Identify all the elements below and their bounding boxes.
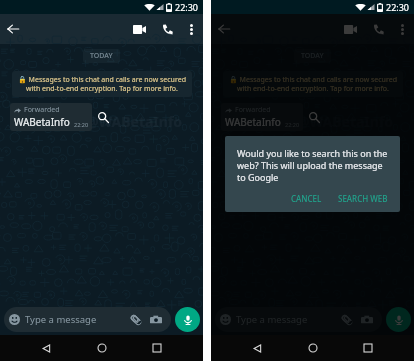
staticText: TODAY bbox=[90, 51, 113, 61]
button[interactable]: Attach bbox=[340, 313, 354, 327]
button[interactable]: Type a message bbox=[4, 307, 171, 332]
button[interactable]: Video call bbox=[336, 15, 364, 43]
staticText: CANCEL bbox=[291, 193, 322, 204]
button[interactable]: Back bbox=[248, 339, 266, 357]
button[interactable]: 🔒 Messages to this chat and calls are no… bbox=[12, 71, 192, 97]
staticText: Forwarded bbox=[235, 105, 271, 115]
button[interactable]: Search the web bbox=[96, 110, 110, 124]
button[interactable]: Search the web bbox=[307, 110, 321, 124]
button[interactable]: Camera bbox=[360, 313, 374, 327]
staticText: 22:30 bbox=[175, 1, 199, 13]
button[interactable]: Video call bbox=[125, 15, 153, 43]
button[interactable]: Call bbox=[364, 15, 392, 43]
button[interactable]: Home bbox=[304, 339, 322, 357]
staticText: Forwarded bbox=[24, 105, 60, 115]
staticText: @WABetaInfo bbox=[297, 112, 394, 131]
staticText: 🔒 Messages to this chat and calls are no… bbox=[17, 75, 187, 93]
staticText: 22:30 bbox=[386, 1, 410, 13]
button[interactable]: Camera bbox=[149, 313, 163, 327]
staticText: @WABetaInfo bbox=[86, 112, 183, 131]
button[interactable]: CANCEL bbox=[286, 191, 327, 206]
staticText: Type a message bbox=[236, 313, 340, 326]
button[interactable]: Home bbox=[93, 339, 111, 357]
staticText: TODAY bbox=[301, 51, 324, 61]
button[interactable]: Forwarded bbox=[10, 103, 92, 131]
button[interactable]: Recents bbox=[148, 339, 166, 357]
staticText: Would you like to search this on the web… bbox=[237, 147, 390, 183]
staticText: WABetaInfo bbox=[14, 115, 70, 129]
staticText: 🔒 Messages to this chat and calls are no… bbox=[228, 75, 398, 93]
button[interactable]: Recents bbox=[359, 339, 377, 357]
button[interactable]: More options bbox=[181, 19, 201, 39]
staticText: WABetaInfo bbox=[225, 115, 281, 129]
button[interactable]: 🔒 Messages to this chat and calls are no… bbox=[223, 71, 403, 97]
button[interactable]: Back bbox=[213, 18, 235, 40]
staticText: Type a message bbox=[25, 313, 129, 326]
button[interactable]: Attach bbox=[129, 313, 143, 327]
button[interactable]: Call bbox=[153, 15, 181, 43]
button[interactable]: Forwarded bbox=[221, 103, 303, 131]
staticText: 22:20 bbox=[285, 121, 300, 128]
button[interactable]: SEARCH WEB bbox=[333, 191, 390, 206]
button[interactable]: Voice message bbox=[386, 307, 411, 332]
staticText: SEARCH WEB bbox=[338, 193, 388, 204]
button[interactable]: Type a message bbox=[215, 307, 382, 332]
staticText: 22:20 bbox=[74, 121, 89, 128]
button[interactable]: Back bbox=[37, 339, 55, 357]
button[interactable]: Back bbox=[2, 18, 24, 40]
button[interactable]: More options bbox=[392, 19, 412, 39]
button[interactable]: Voice message bbox=[175, 307, 200, 332]
